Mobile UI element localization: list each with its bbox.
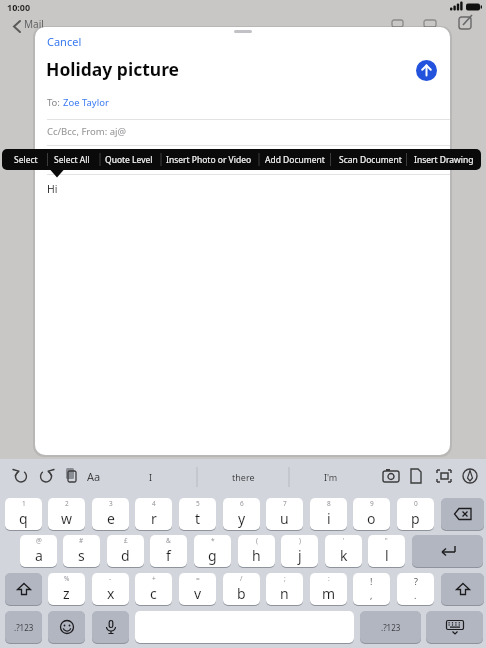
- staticText: s: [78, 546, 85, 565]
- staticText: g: [208, 546, 217, 565]
- staticText: 6: [240, 499, 244, 508]
- button[interactable]: ): [281, 535, 318, 567]
- button[interactable]: 5: [179, 498, 216, 530]
- button[interactable]: #: [63, 535, 100, 567]
- staticText: I: [149, 471, 153, 483]
- button[interactable]: Zoe Taylor: [63, 96, 109, 109]
- staticText: d: [121, 546, 130, 565]
- staticText: n: [280, 584, 289, 603]
- button[interactable]: %: [48, 573, 85, 605]
- button[interactable]: Insert Drawing: [414, 154, 474, 166]
- button[interactable]: 8: [310, 498, 347, 530]
- staticText: Zoe Taylor: [63, 96, 109, 109]
- button[interactable]: Select: [14, 154, 38, 166]
- staticText: a: [35, 546, 43, 565]
- staticText: ': [343, 536, 345, 545]
- button[interactable]: 3: [92, 498, 129, 530]
- button[interactable]: [5, 573, 42, 605]
- staticText: 7: [283, 499, 287, 508]
- staticText: Aa: [87, 469, 101, 484]
- staticText: z: [63, 584, 70, 603]
- staticText: To:: [47, 96, 60, 109]
- button[interactable]: Quote Level: [105, 154, 153, 166]
- staticText: I'm: [324, 471, 338, 483]
- staticText: /: [240, 574, 243, 583]
- staticText: :: [328, 574, 330, 583]
- staticText: &: [166, 536, 171, 545]
- staticText: v: [194, 584, 202, 603]
- button[interactable]: ': [325, 535, 362, 567]
- staticText: u: [280, 509, 289, 528]
- staticText: +: [152, 574, 156, 583]
- staticText: f: [166, 546, 171, 565]
- button[interactable]: (: [238, 535, 275, 567]
- button[interactable]: +: [135, 573, 172, 605]
- button[interactable]: =: [179, 573, 216, 605]
- button[interactable]: ": [368, 535, 405, 567]
- button[interactable]: [441, 498, 484, 530]
- staticText: ": [385, 536, 388, 545]
- staticText: h: [252, 546, 261, 565]
- button[interactable]: [412, 535, 483, 567]
- button[interactable]: @: [20, 535, 57, 567]
- staticText: x: [107, 584, 115, 603]
- staticText: c: [150, 584, 157, 603]
- staticText: .?123: [381, 622, 401, 633]
- staticText: 3: [109, 499, 113, 508]
- button[interactable]: ;: [266, 573, 303, 605]
- staticText: Mail: [24, 17, 44, 31]
- staticText: m: [322, 584, 336, 603]
- staticText: p: [411, 509, 420, 528]
- staticText: q: [19, 509, 28, 528]
- button[interactable]: 9: [353, 498, 390, 530]
- button[interactable]: Add Document: [265, 154, 325, 166]
- staticText: Cancel: [47, 34, 82, 49]
- button[interactable]: 7: [266, 498, 303, 530]
- button[interactable]: 6: [223, 498, 260, 530]
- button[interactable]: [135, 611, 354, 643]
- button[interactable]: 0: [397, 498, 434, 530]
- button[interactable]: /: [223, 573, 260, 605]
- button[interactable]: 1: [5, 498, 42, 530]
- button[interactable]: .?123: [360, 611, 421, 643]
- staticText: l: [385, 546, 389, 565]
- button[interactable]: &: [150, 535, 187, 567]
- staticText: t: [195, 509, 201, 528]
- staticText: (: [256, 536, 258, 545]
- button[interactable]: ?: [397, 573, 434, 605]
- button[interactable]: *: [194, 535, 231, 567]
- staticText: 5: [196, 499, 200, 508]
- button[interactable]: 2: [48, 498, 85, 530]
- staticText: b: [237, 584, 246, 603]
- button[interactable]: [426, 611, 483, 643]
- button[interactable]: £: [107, 535, 144, 567]
- staticText: o: [367, 509, 376, 528]
- staticText: y: [238, 509, 246, 528]
- button[interactable]: !: [353, 573, 390, 605]
- staticText: k: [340, 546, 348, 565]
- staticText: Hi: [47, 182, 58, 196]
- button[interactable]: Select All: [54, 154, 90, 166]
- staticText: 4: [152, 499, 156, 508]
- button[interactable]: [48, 611, 85, 643]
- button[interactable]: 4: [135, 498, 172, 530]
- staticText: i: [327, 509, 331, 528]
- staticText: j: [298, 546, 302, 565]
- button[interactable]: [92, 611, 129, 643]
- staticText: e: [107, 509, 115, 528]
- staticText: @: [36, 536, 42, 545]
- button[interactable]: -: [92, 573, 129, 605]
- staticText: there: [232, 471, 255, 483]
- staticText: 0: [414, 499, 418, 508]
- button[interactable]: [441, 573, 484, 605]
- button[interactable]: :: [310, 573, 347, 605]
- staticText: ?: [414, 575, 418, 587]
- button[interactable]: .?123: [5, 611, 42, 643]
- staticText: 1: [22, 499, 26, 508]
- button[interactable]: [416, 60, 437, 81]
- button[interactable]: Scan Document: [339, 154, 402, 166]
- button[interactable]: Insert Photo or Video: [166, 154, 252, 166]
- staticText: r: [151, 509, 157, 528]
- staticText: -: [109, 574, 112, 583]
- button[interactable]: Cancel: [47, 34, 82, 49]
